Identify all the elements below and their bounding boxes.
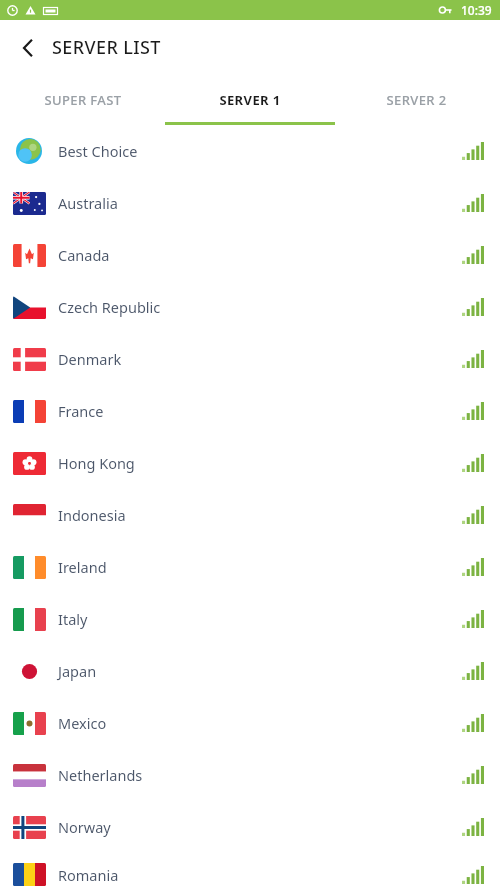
staticText: SERVER 2 xyxy=(386,91,447,109)
button[interactable]: Mexico xyxy=(0,697,500,749)
button[interactable]: Canada xyxy=(0,229,500,281)
button[interactable]: Hong Kong xyxy=(0,437,500,489)
button[interactable]: Italy xyxy=(0,593,500,645)
staticText: SERVER LIST xyxy=(52,35,161,60)
staticText: Hong Kong xyxy=(58,453,135,473)
staticText: Italy xyxy=(58,609,88,629)
button[interactable]: Back xyxy=(8,28,48,68)
staticText: Japan xyxy=(58,661,97,681)
staticText: SERVER 1 xyxy=(219,91,281,109)
button[interactable]: SUPER FAST xyxy=(0,75,166,125)
button[interactable]: France xyxy=(0,385,500,437)
button[interactable]: Denmark xyxy=(0,333,500,385)
button[interactable]: Netherlands xyxy=(0,749,500,801)
staticText: 10:39 xyxy=(461,2,492,18)
button[interactable]: Czech Republic xyxy=(0,281,500,333)
staticText: SUPER FAST xyxy=(44,91,122,109)
staticText: France xyxy=(58,401,104,421)
button[interactable]: Best Choice xyxy=(0,125,500,177)
button[interactable]: Indonesia xyxy=(0,489,500,541)
button[interactable]: SERVER 1 xyxy=(166,75,333,125)
staticText: Australia xyxy=(58,193,118,213)
staticText: Best Choice xyxy=(58,141,138,161)
staticText: Czech Republic xyxy=(58,297,161,317)
button[interactable]: Norway xyxy=(0,801,500,853)
staticText: Canada xyxy=(58,245,110,265)
staticText: Mexico xyxy=(58,713,107,733)
button[interactable]: Australia xyxy=(0,177,500,229)
button[interactable]: Ireland xyxy=(0,541,500,593)
staticText: Norway xyxy=(58,817,111,837)
staticText: Denmark xyxy=(58,349,122,369)
staticText: Netherlands xyxy=(58,765,143,785)
staticText: Ireland xyxy=(58,557,107,577)
staticText: Indonesia xyxy=(58,505,126,525)
button[interactable]: SERVER 2 xyxy=(333,75,500,125)
staticText: Romania xyxy=(58,865,119,885)
button[interactable]: Japan xyxy=(0,645,500,697)
button[interactable]: Romania xyxy=(0,853,500,896)
